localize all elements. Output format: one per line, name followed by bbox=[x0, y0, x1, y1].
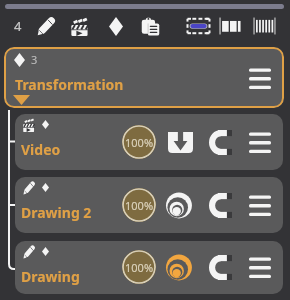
button[interactable]: Clip type bbox=[15, 114, 283, 170]
staticText: Drawing bbox=[21, 267, 80, 286]
button[interactable]: Reorder bbox=[245, 63, 275, 93]
button[interactable]: Drawing type bbox=[23, 244, 47, 262]
button[interactable]: 3 bbox=[4, 47, 284, 108]
button[interactable]: Reorder bbox=[243, 188, 277, 222]
staticText: 100% bbox=[125, 135, 154, 150]
button[interactable]: Edit bbox=[30, 12, 62, 40]
button[interactable]: Magnet bbox=[203, 250, 237, 284]
button[interactable]: Frames bbox=[248, 12, 280, 40]
staticText: Video bbox=[21, 140, 61, 159]
button[interactable]: Video clip bbox=[64, 12, 96, 40]
staticText: 100% bbox=[125, 198, 154, 213]
button[interactable]: Drawing type bbox=[23, 180, 47, 198]
staticText: 3 bbox=[31, 52, 38, 67]
staticText: Drawing 2 bbox=[21, 203, 92, 222]
button[interactable]: Drawing type bbox=[15, 241, 283, 294]
button[interactable]: Timeline bbox=[214, 12, 246, 40]
button[interactable]: 4 bbox=[2, 12, 34, 40]
button[interactable]: Reorder bbox=[243, 125, 277, 159]
staticText: Transformation bbox=[15, 75, 124, 94]
button[interactable]: Reorder bbox=[243, 250, 277, 284]
button[interactable]: Drawing type bbox=[15, 177, 283, 233]
button[interactable]: 100% bbox=[119, 247, 159, 287]
button[interactable]: 100% bbox=[119, 122, 159, 162]
button[interactable]: 100% bbox=[119, 185, 159, 225]
button[interactable]: Blur bbox=[163, 188, 197, 222]
button[interactable]: Shape bbox=[100, 12, 132, 40]
button[interactable]: Selection bbox=[182, 12, 214, 40]
button[interactable]: Blur bbox=[163, 250, 197, 284]
button[interactable]: Magnet bbox=[203, 125, 237, 159]
staticText: 100% bbox=[125, 260, 154, 275]
staticText: 4 bbox=[14, 17, 22, 35]
button[interactable]: Merge down bbox=[163, 125, 197, 159]
button[interactable]: Notes bbox=[134, 12, 166, 40]
button[interactable]: Magnet bbox=[203, 188, 237, 222]
button[interactable]: Clip type bbox=[23, 117, 47, 135]
